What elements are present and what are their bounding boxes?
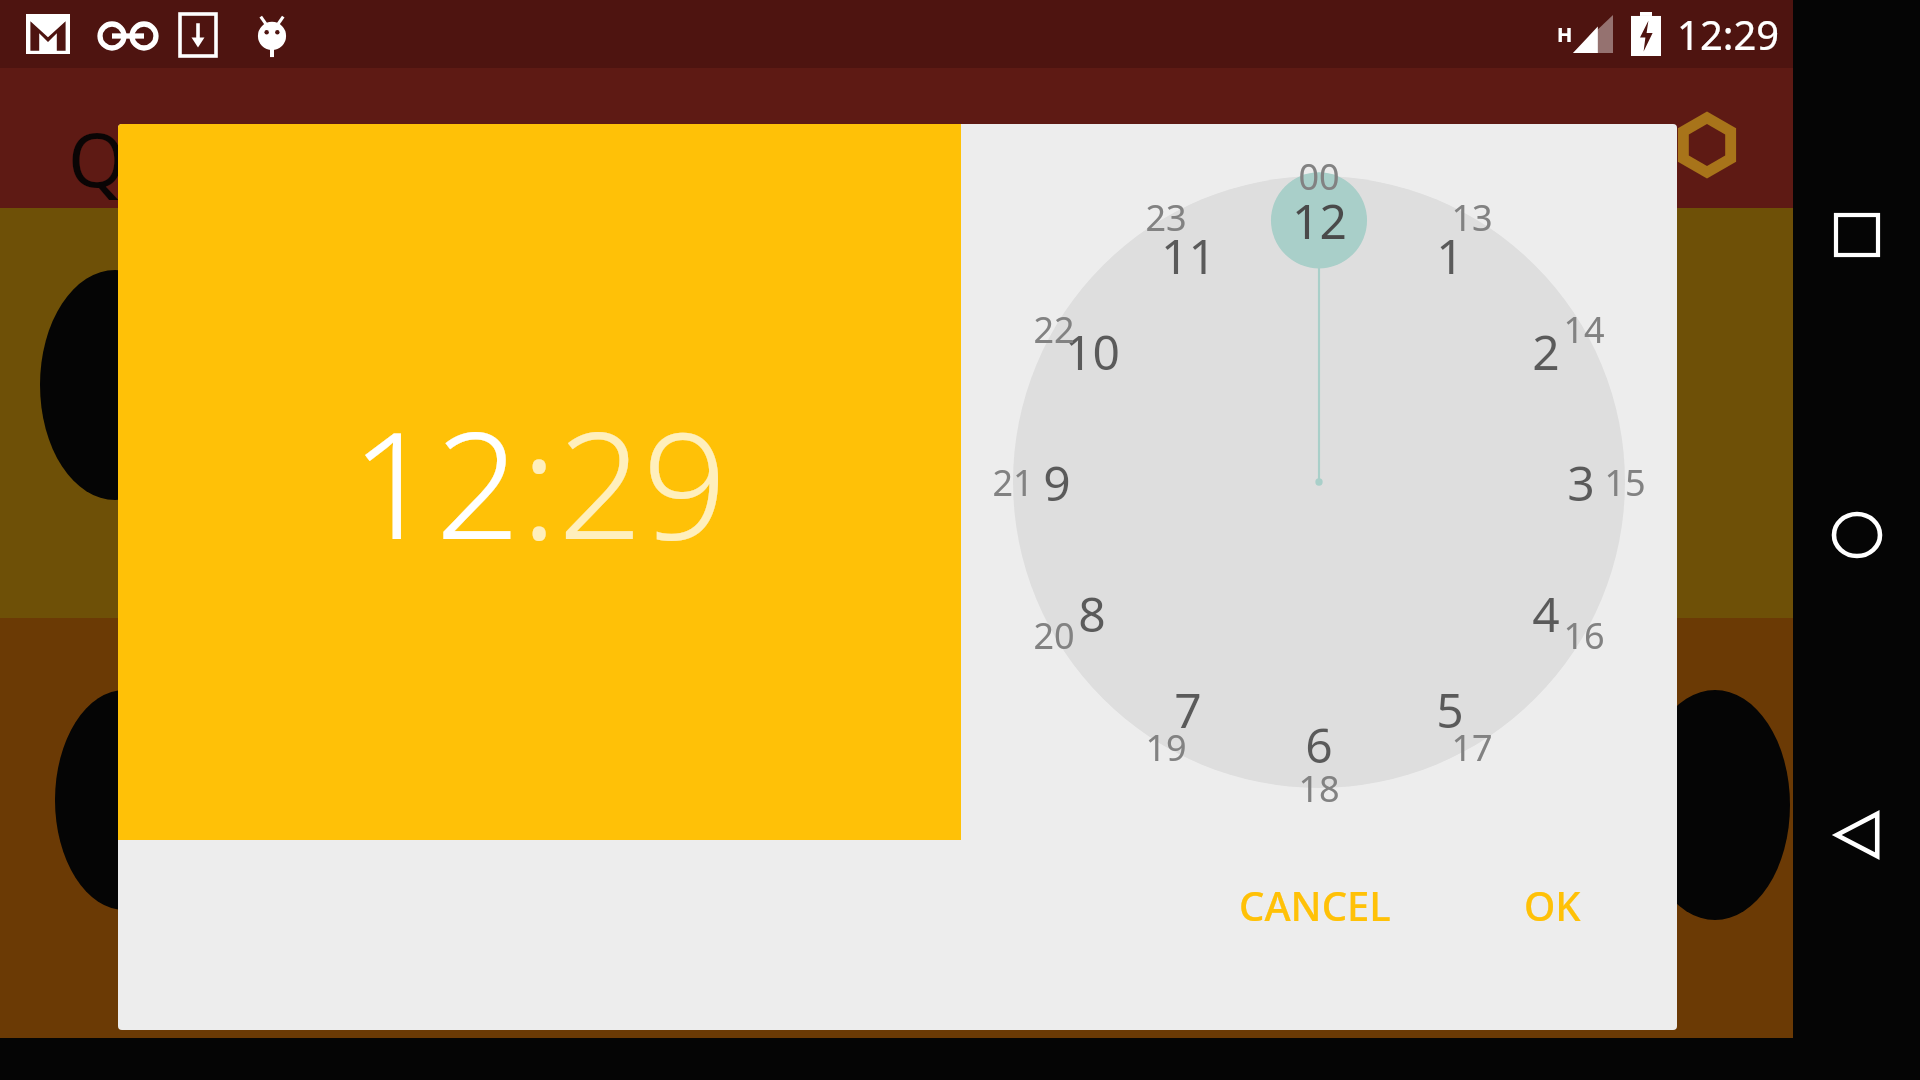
button[interactable]: Recents: [1822, 200, 1892, 270]
button[interactable]: OK: [1500, 862, 1605, 948]
staticText: 12: [1292, 188, 1347, 253]
staticText: 5: [1436, 677, 1464, 742]
staticText: 12:29: [1677, 7, 1780, 61]
button[interactable]: CANCEL: [1215, 862, 1415, 948]
staticText: 1: [1436, 223, 1464, 288]
staticText: 20: [1033, 611, 1075, 660]
staticText: 00: [1298, 152, 1340, 201]
staticText: 8: [1078, 581, 1106, 646]
staticText: 23: [1145, 193, 1187, 242]
button[interactable]: Back: [1822, 800, 1892, 870]
staticText: H: [1557, 21, 1573, 48]
staticText: 19: [1145, 723, 1187, 772]
button[interactable]: Home: [1822, 500, 1892, 570]
staticText: 3: [1567, 450, 1595, 515]
staticText: 21: [992, 458, 1034, 507]
staticText: 22: [1033, 305, 1075, 354]
staticText: 10: [1065, 319, 1120, 384]
staticText: 16: [1563, 611, 1605, 660]
staticText: 17: [1451, 723, 1493, 772]
staticText: 11: [1161, 223, 1216, 288]
staticText: 9: [1043, 450, 1071, 515]
staticText: 7: [1174, 677, 1202, 742]
button[interactable]: 1: [1013, 176, 1625, 788]
staticText: 4: [1532, 581, 1560, 646]
staticText: 18: [1298, 764, 1340, 813]
staticText: Q: [68, 108, 126, 209]
staticText: 14: [1563, 305, 1605, 354]
button[interactable]: 12: [351, 381, 521, 583]
staticText: CANCEL: [1239, 878, 1391, 932]
staticText: 13: [1451, 193, 1493, 242]
staticText: :: [521, 381, 558, 583]
staticText: 6: [1305, 712, 1333, 777]
staticText: 2: [1532, 319, 1560, 384]
button[interactable]: 29: [558, 381, 728, 583]
staticText: OK: [1524, 878, 1581, 932]
staticText: 15: [1604, 458, 1646, 507]
